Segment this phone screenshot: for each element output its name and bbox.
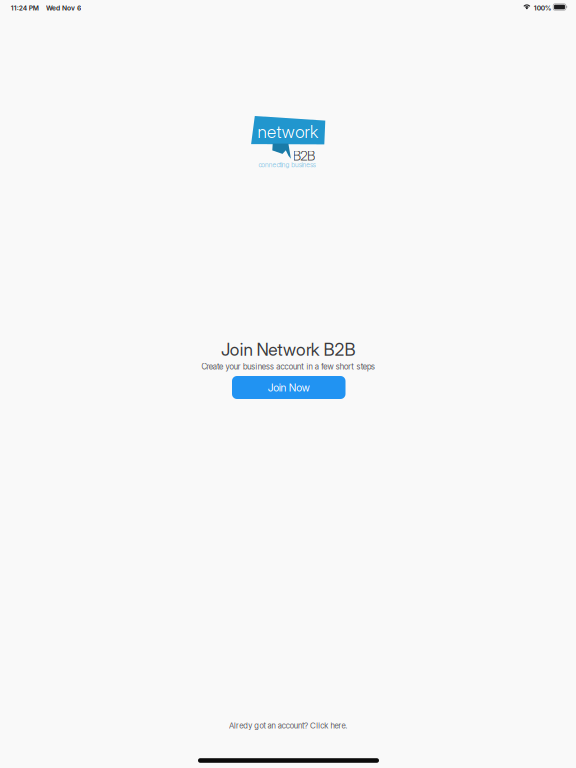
staticText: 11:24 PM bbox=[11, 4, 39, 12]
staticText: connecting business bbox=[258, 161, 316, 169]
staticText: Create your business account in a few sh… bbox=[201, 362, 375, 371]
button[interactable]: Join Now bbox=[232, 376, 345, 399]
staticText: Join Now bbox=[268, 381, 310, 394]
staticText: Alredy got an account? Click here. bbox=[229, 721, 348, 730]
staticText: Wed Nov 6 bbox=[46, 4, 81, 12]
staticText: Join Network B2B bbox=[221, 339, 355, 360]
button[interactable]: Alredy got an account? Click here. bbox=[218, 717, 358, 733]
staticText: network bbox=[258, 121, 318, 142]
staticText: 100% bbox=[534, 4, 552, 12]
staticText: B2B bbox=[293, 148, 315, 164]
